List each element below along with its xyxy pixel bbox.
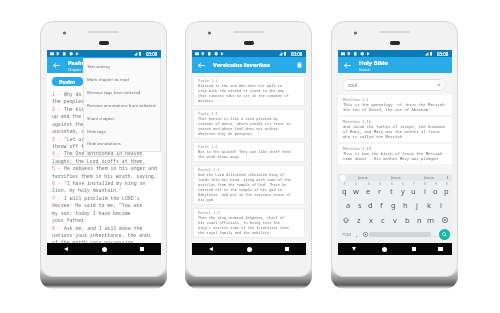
staticText: Psalm — [68, 59, 86, 67]
button[interactable]: 2 — [350, 181, 362, 197]
staticText: soul — [348, 82, 358, 88]
button[interactable]: . — [431, 227, 439, 242]
button[interactable]: Back — [338, 57, 356, 73]
button[interactable]: Home — [230, 243, 268, 255]
staticText: The One enthroned in heaven — [64, 150, 143, 157]
staticText: o — [433, 186, 438, 196]
button[interactable]: 5 — [386, 181, 397, 197]
button[interactable]: Mark chapter as read — [83, 73, 161, 86]
staticText: Ask me, and I will make the — [64, 225, 143, 232]
button[interactable]: Back — [47, 57, 65, 73]
staticText: e — [366, 186, 371, 196]
button[interactable]: Jesus — [379, 174, 412, 181]
button[interactable]: x — [365, 212, 377, 227]
button[interactable]: Hide keyboard — [338, 243, 369, 255]
button[interactable]: h — [399, 197, 411, 212]
button[interactable]: m — [425, 212, 437, 227]
button[interactable]: 6 — [397, 181, 408, 197]
button[interactable]: 3 — [362, 181, 374, 197]
staticText: Why do the nations conspire and — [64, 91, 155, 98]
staticText: 0 — [446, 182, 448, 186]
button[interactable]: Home — [369, 243, 399, 255]
staticText: z — [357, 215, 361, 225]
button[interactable]: Remove tags from selected — [83, 86, 161, 99]
button[interactable]: l — [435, 197, 447, 212]
button[interactable]: Search — [439, 229, 450, 240]
staticText: 03:08 — [291, 51, 303, 57]
staticText: 7 — [413, 182, 415, 186]
button[interactable]: a — [343, 197, 354, 212]
button[interactable]: Home — [85, 243, 123, 255]
staticText: Hide annotations — [87, 141, 121, 147]
button[interactable]: Backspace — [437, 212, 452, 227]
button[interactable]: Matthew 1:18 — [338, 144, 452, 164]
button[interactable]: k — [423, 197, 435, 212]
button[interactable]: Recents — [123, 243, 161, 255]
button[interactable]: Psalm 1:3 — [193, 109, 305, 139]
button[interactable]: Hide tags — [83, 125, 161, 138]
button[interactable]: Jesus — [346, 174, 379, 181]
button[interactable]: soul — [342, 79, 446, 91]
staticText: 3 - — [52, 136, 64, 143]
staticText: 6 - — [52, 180, 64, 187]
button[interactable]: d — [365, 197, 376, 212]
button[interactable]: , — [353, 227, 361, 242]
staticText: . — [434, 231, 436, 239]
button[interactable]: Jesus — [412, 174, 445, 181]
button[interactable]: 4 — [374, 181, 386, 197]
button[interactable]: Emoji — [361, 227, 369, 242]
button[interactable]: Voice — [340, 175, 346, 181]
button[interactable]: v — [389, 212, 401, 227]
button[interactable]: Delete all — [292, 58, 306, 72]
button[interactable]: Matthew 1:1 — [338, 95, 452, 115]
button[interactable]: Hide annotations — [83, 138, 161, 150]
button[interactable]: z — [353, 212, 365, 227]
button[interactable]: Psalm 1:4 — [193, 142, 305, 162]
staticText: i — [424, 186, 426, 196]
button[interactable]: Switch keyboard — [429, 243, 452, 255]
button[interactable]: Psalm — [52, 77, 83, 86]
button[interactable]: 1 — [338, 181, 350, 197]
staticText: Chapter 2 — [68, 67, 85, 72]
button[interactable]: Share chapter — [83, 112, 161, 125]
button[interactable]: Back — [192, 57, 210, 73]
button[interactable]: Daniel 1:3 — [193, 208, 305, 238]
staticText: Blessed is the one who does not walk in … — [198, 83, 292, 103]
button[interactable]: 0 — [441, 181, 452, 197]
button[interactable]: 7 — [408, 181, 419, 197]
button[interactable]: Back — [192, 243, 230, 255]
staticText: Hide tags — [87, 129, 106, 135]
button[interactable]: c — [377, 212, 389, 227]
button[interactable]: Remove annotations from selected — [83, 99, 161, 112]
staticText: 6 — [402, 182, 404, 186]
button[interactable]: Matthew 1:16 — [338, 117, 452, 142]
staticText: q — [342, 186, 347, 196]
button[interactable]: f — [376, 197, 387, 212]
button[interactable]: ?123 — [340, 227, 353, 242]
button[interactable]: 8 — [419, 181, 430, 197]
button[interactable]: Recents — [268, 243, 306, 255]
staticText: Matthew 1:18 — [343, 146, 372, 151]
button[interactable]: n — [413, 212, 425, 227]
staticText: , — [356, 231, 358, 239]
button[interactable]: Recents — [399, 243, 429, 255]
button[interactable]: j — [411, 197, 423, 212]
button[interactable]: Back — [47, 243, 85, 255]
button[interactable]: Psalm 1:1 — [193, 76, 305, 106]
staticText: 1 - — [52, 91, 64, 98]
staticText: j — [416, 200, 418, 210]
button[interactable]: Daniel 1:2 — [193, 165, 305, 205]
button[interactable]: g — [387, 197, 399, 212]
staticText: the peoples plot in vain? — [52, 98, 125, 105]
staticText: Share chapter — [87, 116, 115, 122]
button[interactable]: b — [401, 212, 413, 227]
button[interactable]: Clear search — [437, 83, 441, 87]
button[interactable]: s — [354, 197, 365, 212]
button[interactable]: Shift — [338, 212, 353, 227]
button[interactable]: 9 — [430, 181, 441, 197]
button[interactable]: Text setting — [83, 60, 161, 73]
button[interactable]: More — [445, 174, 450, 181]
staticText: 9 — [435, 182, 437, 186]
staticText: your father. — [52, 217, 87, 224]
